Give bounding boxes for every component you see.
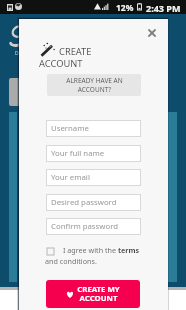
button[interactable]: Confirm password bbox=[46, 218, 141, 235]
staticText: ALREADY HAVE AN ACCOUNT? bbox=[66, 76, 123, 94]
staticText: Confirm password bbox=[51, 221, 119, 232]
staticText: I agree with the terms and conditions. bbox=[45, 245, 146, 266]
button[interactable]: CREATE MY ACCOUNT bbox=[46, 280, 140, 308]
button[interactable]: Your email bbox=[46, 169, 141, 186]
staticText: Your email bbox=[51, 172, 90, 183]
staticText: CREATE bbox=[59, 45, 92, 58]
staticText: 2:43 PM bbox=[146, 2, 181, 14]
staticText: Username bbox=[51, 123, 89, 134]
button[interactable]: Agree to terms and conditions bbox=[47, 248, 54, 255]
button[interactable]: Your full name bbox=[46, 145, 141, 162]
staticText: 12% bbox=[116, 2, 134, 14]
button[interactable]: ALREADY HAVE AN ACCOUNT? bbox=[47, 74, 141, 96]
button[interactable]: Desired password bbox=[46, 194, 141, 211]
staticText: Your full name bbox=[51, 148, 105, 159]
staticText: ACCOUNT bbox=[39, 57, 83, 70]
staticText: Desired password bbox=[51, 197, 117, 208]
button[interactable]: Close bbox=[142, 23, 162, 43]
button[interactable]: Username bbox=[46, 120, 141, 137]
staticText: CREATE MY ACCOUNT bbox=[77, 284, 120, 304]
staticText: DIVE bbox=[15, 50, 30, 57]
